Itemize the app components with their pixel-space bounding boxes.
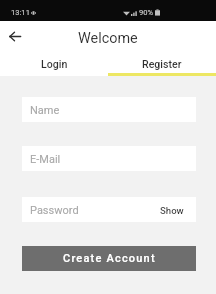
staticText: 90%	[139, 8, 154, 17]
button[interactable]: Register	[108, 54, 216, 76]
button[interactable]: E-Mail	[22, 146, 196, 171]
button[interactable]: Create Account	[22, 246, 196, 271]
staticText: Password	[30, 204, 79, 217]
staticText: Register	[142, 58, 182, 70]
staticText: Welcome	[78, 30, 138, 47]
staticText: E-Mail	[30, 153, 61, 166]
staticText: Create Account	[63, 252, 156, 265]
staticText: Login	[41, 58, 68, 70]
button[interactable]: Name	[22, 97, 196, 122]
button[interactable]: Password	[22, 197, 196, 222]
staticText: 13:11	[11, 8, 30, 17]
button[interactable]: Login	[0, 54, 108, 76]
button[interactable]: Back	[3, 24, 26, 49]
staticText: Name	[30, 104, 60, 117]
staticText: Show	[160, 205, 184, 216]
